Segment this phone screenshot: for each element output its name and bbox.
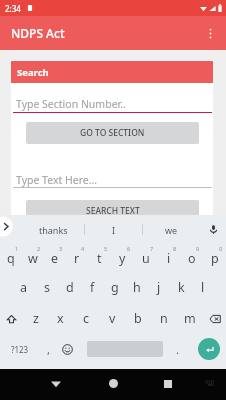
button[interactable]: s [35, 274, 58, 304]
staticText: i [167, 250, 171, 267]
staticText: y [119, 250, 126, 267]
button[interactable]: Expand suggestions [0, 215, 22, 244]
button[interactable]: f [81, 274, 104, 304]
staticText: , [47, 342, 50, 357]
staticText: b [134, 310, 142, 327]
button[interactable]: we [143, 215, 200, 244]
staticText: j [157, 279, 161, 296]
button[interactable]: 6 [111, 244, 134, 274]
staticText: 9 [196, 245, 200, 252]
staticText: p [211, 250, 219, 267]
staticText: GO TO SECTION [80, 127, 145, 139]
staticText: ?123 [11, 344, 29, 355]
staticText: Type Text Here... [16, 173, 98, 187]
button[interactable]: Back [36, 369, 76, 400]
staticText: r [74, 250, 80, 267]
staticText: u [142, 250, 150, 267]
staticText: e [51, 250, 59, 267]
staticText: x [57, 310, 64, 327]
button[interactable]: v [99, 304, 125, 334]
staticText: 2:34 [5, 3, 21, 14]
button[interactable]: Backspace [203, 304, 226, 334]
button[interactable]: k [170, 274, 192, 304]
button[interactable]: g [104, 274, 126, 304]
button[interactable]: 5 [88, 244, 111, 274]
staticText: q [7, 250, 15, 267]
staticText: m [184, 310, 196, 327]
staticText: 4 [81, 245, 85, 252]
button[interactable]: I [85, 215, 142, 244]
staticText: 2 [37, 245, 41, 252]
staticText: g [111, 279, 119, 296]
staticText: l [201, 279, 205, 296]
button[interactable]: Emoji [57, 334, 87, 364]
staticText: . [176, 342, 179, 357]
staticText: t [97, 250, 102, 267]
button[interactable]: 7 [134, 244, 157, 274]
button[interactable]: 0 [203, 244, 226, 274]
button[interactable]: 3 [44, 244, 66, 274]
button[interactable]: 1 [0, 244, 22, 274]
button[interactable]: Period [163, 334, 191, 364]
staticText: I [112, 224, 116, 236]
button[interactable]: x [48, 304, 73, 334]
staticText: d [66, 279, 74, 296]
staticText: Search [17, 66, 49, 79]
button[interactable]: l [192, 274, 214, 304]
button[interactable]: Enter [191, 334, 226, 364]
button[interactable]: ?123 [0, 334, 40, 364]
staticText: c [83, 310, 90, 327]
staticText: 8 [173, 245, 177, 252]
button[interactable]: m [177, 304, 203, 334]
button[interactable]: 8 [157, 244, 180, 274]
staticText: SEARCH TEXT [86, 205, 140, 215]
button[interactable]: j [148, 274, 170, 304]
staticText: v [109, 310, 116, 327]
button[interactable]: thanks [22, 215, 84, 244]
staticText: o [188, 250, 196, 267]
staticText: Type Section Number.. [16, 97, 126, 111]
button[interactable]: n [151, 304, 177, 334]
button[interactable]: h [126, 274, 148, 304]
button[interactable]: GO TO SECTION [26, 122, 199, 144]
staticText: we [165, 224, 178, 236]
button[interactable]: 2 [22, 244, 44, 274]
button[interactable]: Recents [148, 369, 188, 400]
staticText: 6 [127, 245, 131, 252]
button[interactable]: 9 [180, 244, 203, 274]
staticText: 5 [104, 245, 108, 252]
button[interactable]: SEARCH TEXT [26, 200, 199, 215]
staticText: NDPS Act [11, 25, 65, 41]
button[interactable]: z [23, 304, 48, 334]
staticText: s [44, 279, 50, 296]
staticText: a [20, 279, 28, 296]
button[interactable]: Hide keyboard [194, 369, 226, 400]
staticText: f [90, 279, 95, 296]
button[interactable]: Home [93, 369, 133, 400]
button[interactable]: Voice input [200, 215, 226, 244]
staticText: n [160, 310, 168, 327]
button[interactable]: a [12, 274, 35, 304]
button[interactable]: 4 [66, 244, 88, 274]
button[interactable]: Comma [40, 334, 57, 364]
staticText: 0 [219, 245, 223, 252]
staticText: k [178, 279, 185, 296]
staticText: z [33, 310, 39, 327]
staticText: thanks [39, 224, 68, 236]
staticText: w [28, 250, 38, 267]
button[interactable]: c [73, 304, 99, 334]
button[interactable]: More options [199, 22, 221, 44]
button[interactable]: d [58, 274, 81, 304]
button[interactable]: b [125, 304, 151, 334]
staticText: 1 [15, 245, 19, 252]
staticText: h [133, 279, 141, 296]
staticText: 7 [150, 245, 154, 252]
button[interactable]: Shift [0, 304, 23, 334]
staticText: 3 [59, 245, 63, 252]
